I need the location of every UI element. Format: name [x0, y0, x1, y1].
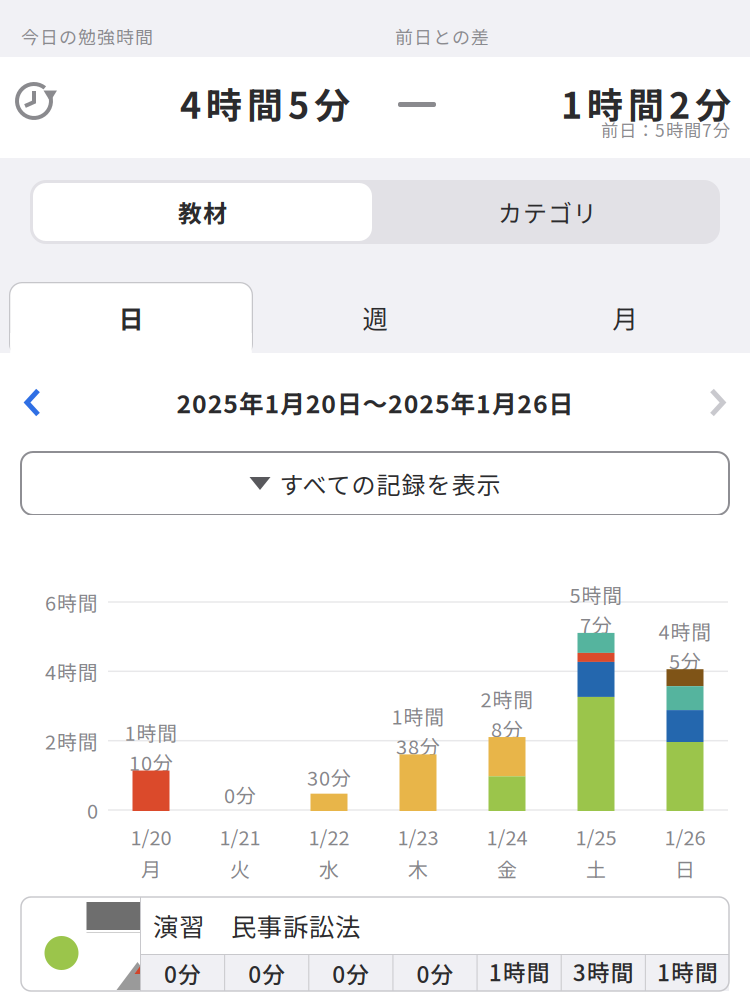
staticText: 1/21 [219, 822, 260, 851]
staticText: 1/22 [308, 822, 349, 851]
staticText: 2時間 [480, 684, 533, 713]
button[interactable]: 日 [0, 270, 244, 341]
staticText: 2025年1月20日〜2025年1月26日 [176, 384, 573, 420]
staticText: 0分 [224, 780, 256, 809]
staticText: 日 [675, 854, 695, 883]
staticText: 1/25 [575, 822, 616, 851]
staticText: 月 [612, 299, 637, 336]
button[interactable]: 教材 [30, 180, 375, 244]
staticText: 週 [362, 299, 387, 336]
staticText: 火 [230, 854, 250, 883]
staticText: 1/26 [664, 822, 705, 851]
button[interactable]: 次の期間 [690, 374, 750, 430]
staticText: 8分 [491, 714, 523, 743]
staticText: 1時間 [391, 701, 444, 730]
staticText: 1時間 [124, 718, 177, 747]
staticText: 今日の勉強時間 [21, 23, 153, 49]
staticText: 0分 [164, 957, 201, 989]
staticText: 0分 [248, 957, 285, 989]
staticText: 日 [118, 299, 143, 336]
staticText: 4時間 [658, 616, 711, 645]
staticText: 3時間 [573, 955, 634, 988]
staticText: カテゴリ [498, 195, 597, 229]
staticText: 5分 [669, 646, 701, 675]
staticText: 木 [408, 854, 428, 883]
staticText: 月 [141, 854, 161, 883]
button[interactable]: 演習 民事訴訟法 [0, 897, 750, 991]
staticText: 教材 [178, 195, 227, 229]
staticText: 2時間 [45, 726, 98, 755]
staticText: 1/24 [486, 822, 527, 851]
button[interactable]: カテゴリ [375, 180, 720, 244]
staticText: 6時間 [45, 587, 98, 616]
staticText: 1/20 [130, 822, 171, 851]
staticText: 0分 [416, 957, 453, 989]
staticText: 水 [319, 854, 339, 883]
staticText: 7分 [580, 610, 612, 639]
staticText: 前日：5時間7分 [601, 117, 730, 142]
button[interactable]: 前の期間 [0, 374, 60, 430]
staticText: 10分 [129, 747, 173, 776]
staticText: 30分 [307, 763, 351, 792]
staticText: 1時間 [489, 955, 550, 988]
staticText: すべての記録を表示 [279, 466, 500, 501]
staticText: 前日との差 [395, 23, 489, 49]
staticText: 金 [497, 854, 517, 883]
staticText: 5時間 [569, 580, 622, 609]
staticText: 4時間 [45, 657, 98, 686]
button[interactable]: すべての記録を表示 [0, 452, 750, 515]
staticText: 4時間5分 [180, 77, 350, 129]
button[interactable]: 週 [0, 270, 250, 341]
staticText: 38分 [396, 731, 440, 760]
staticText: 土 [586, 854, 606, 883]
button[interactable]: 月 [0, 270, 250, 341]
staticText: 1/23 [397, 822, 438, 851]
staticText: 1時間2分 [561, 77, 731, 129]
staticText: 演習 民事訴訟法 [153, 907, 360, 944]
staticText: 0 [87, 795, 98, 824]
staticText: 1時間 [657, 955, 718, 988]
staticText: 0分 [332, 957, 369, 989]
